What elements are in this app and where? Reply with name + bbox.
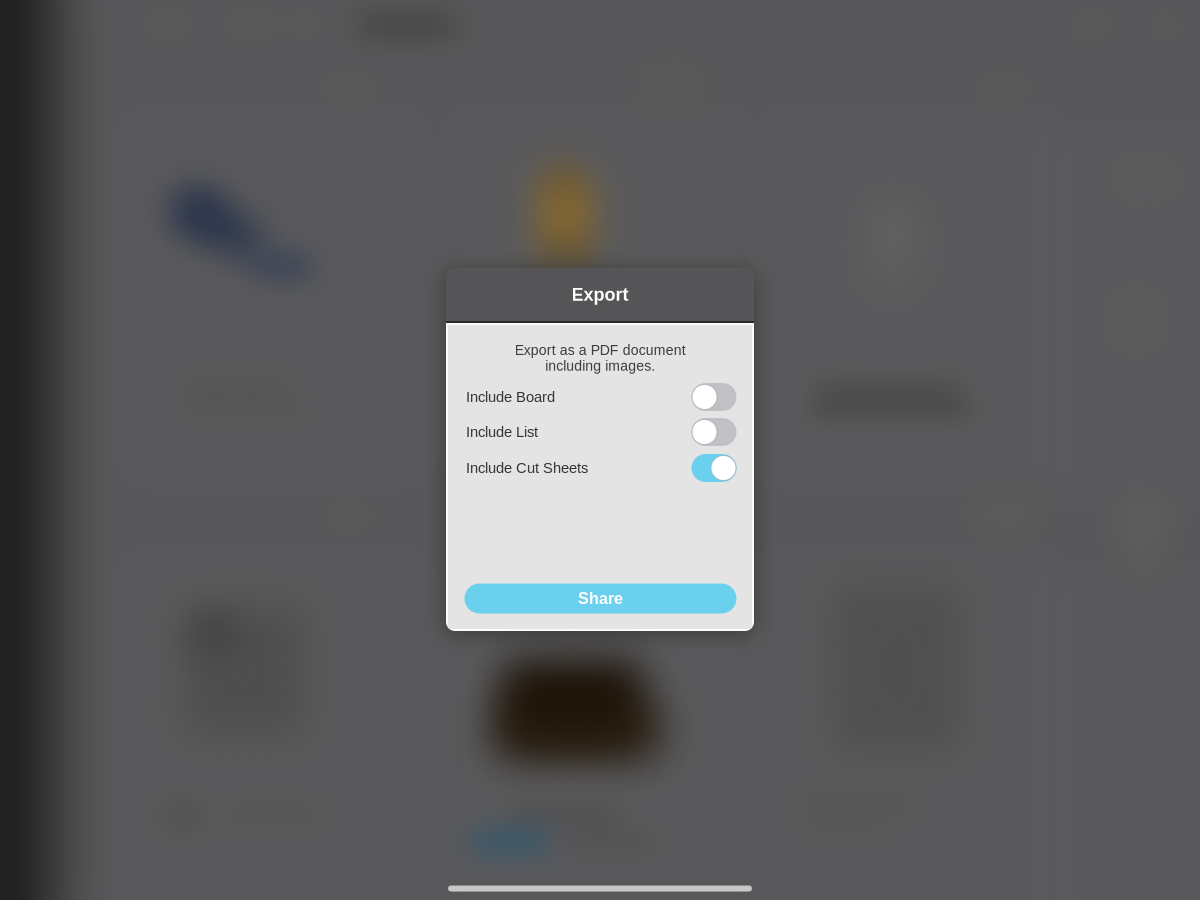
button[interactable]: Include Board (691, 383, 736, 411)
staticText: Include Board (466, 389, 555, 405)
staticText: Share (578, 590, 623, 607)
staticText: Export as a PDF document including image… (514, 342, 685, 374)
button[interactable]: Share (464, 583, 736, 613)
staticText: Include Cut Sheets (466, 460, 588, 476)
staticText: Include List (466, 424, 538, 440)
button[interactable]: Include Cut Sheets (691, 454, 736, 482)
button[interactable]: Include Cut Sheets (446, 454, 754, 482)
button[interactable]: Include List (691, 418, 736, 446)
button[interactable]: Include Board (446, 383, 754, 411)
button[interactable]: Include List (446, 418, 754, 446)
staticText: Export (571, 284, 628, 304)
